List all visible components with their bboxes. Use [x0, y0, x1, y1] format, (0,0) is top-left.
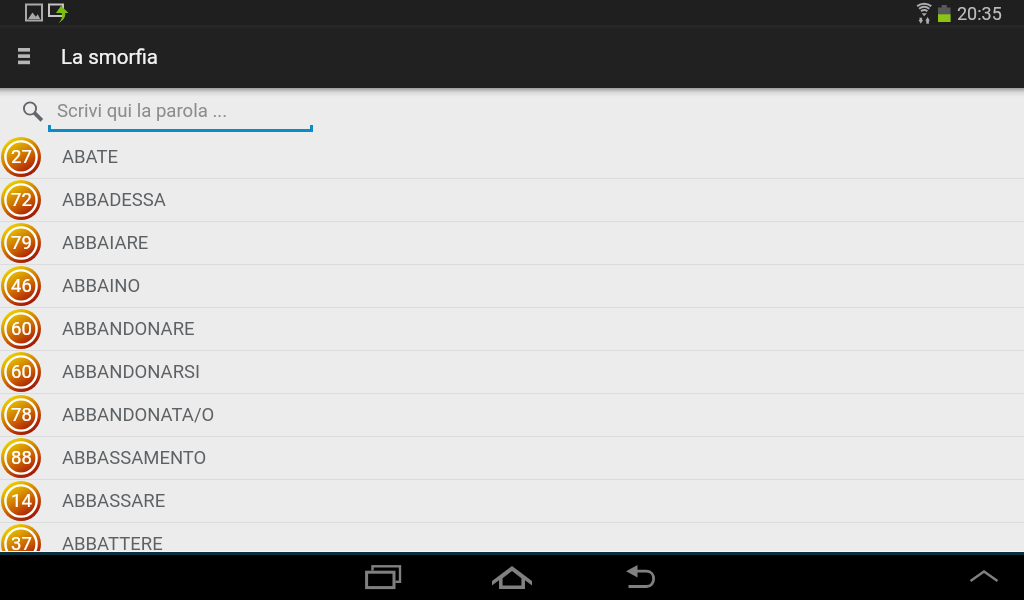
staticText: 72	[11, 189, 32, 211]
staticText: 14	[11, 490, 32, 512]
staticText: Scrivi qui la parola ...	[57, 100, 228, 122]
staticText: 37	[11, 533, 32, 551]
button[interactable]: 27	[0, 136, 1024, 179]
staticText: ABBASSARE	[62, 490, 166, 512]
staticText: ABBADESSA	[62, 189, 166, 211]
staticText: 88	[11, 447, 32, 469]
staticText: La smorfia	[61, 45, 158, 69]
button[interactable]: Home	[477, 551, 547, 600]
staticText: 46	[11, 275, 32, 297]
staticText: 79	[11, 232, 32, 254]
button[interactable]: 79	[0, 222, 1024, 265]
button[interactable]: 46	[0, 265, 1024, 308]
button[interactable]: 78	[0, 394, 1024, 437]
button[interactable]: 88	[0, 437, 1024, 480]
button[interactable]: Show notifications	[954, 551, 1024, 600]
button[interactable]: Open navigation menu	[0, 25, 48, 88]
staticText: 27	[11, 146, 32, 168]
staticText: ABBANDONARE	[62, 318, 195, 340]
staticText: 20:35	[957, 3, 1002, 24]
button[interactable]: 60	[0, 351, 1024, 394]
staticText: ABBAIARE	[62, 232, 149, 254]
staticText: 78	[11, 404, 32, 426]
staticText: ABBASSAMENTO	[62, 447, 207, 469]
staticText: ABBANDONARSI	[62, 361, 201, 383]
staticText: ABBANDONATA/O	[62, 404, 215, 426]
button[interactable]: 37	[0, 523, 1024, 551]
button[interactable]: Scrivi qui la parola ...	[48, 92, 313, 134]
button[interactable]: Back	[608, 551, 678, 600]
staticText: 60	[11, 361, 32, 383]
button[interactable]: 14	[0, 480, 1024, 523]
staticText: ABBATTERE	[62, 533, 163, 551]
staticText: ABATE	[62, 146, 119, 168]
button[interactable]: Recent apps	[347, 551, 417, 600]
staticText: ABBAINO	[62, 275, 141, 297]
button[interactable]: 72	[0, 179, 1024, 222]
button[interactable]: 60	[0, 308, 1024, 351]
staticText: 60	[11, 318, 32, 340]
